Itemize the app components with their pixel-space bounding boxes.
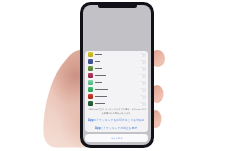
button[interactable]: キャンセル: [85, 134, 148, 142]
staticText: Appにトラッキングの停止を要求: [95, 126, 138, 130]
staticText: Appのトラッキングを許可することを求める: [88, 118, 145, 122]
button[interactable]: [85, 100, 148, 107]
button[interactable]: [85, 79, 148, 86]
staticText: 一部のAppではトラッキングがオフの場合、そのAppへのアクセス: [87, 108, 146, 111]
button[interactable]: [85, 86, 148, 93]
staticText: を制限される場合があります。: [101, 112, 133, 115]
button[interactable]: [85, 72, 148, 79]
button[interactable]: [85, 65, 148, 72]
button[interactable]: [85, 93, 148, 100]
button[interactable]: [85, 58, 148, 65]
button[interactable]: Appにトラッキングの停止を要求: [85, 124, 148, 132]
button[interactable]: [85, 51, 148, 58]
button[interactable]: Appのトラッキングを許可することを求める: [85, 116, 148, 124]
staticText: キャンセル: [111, 137, 123, 140]
